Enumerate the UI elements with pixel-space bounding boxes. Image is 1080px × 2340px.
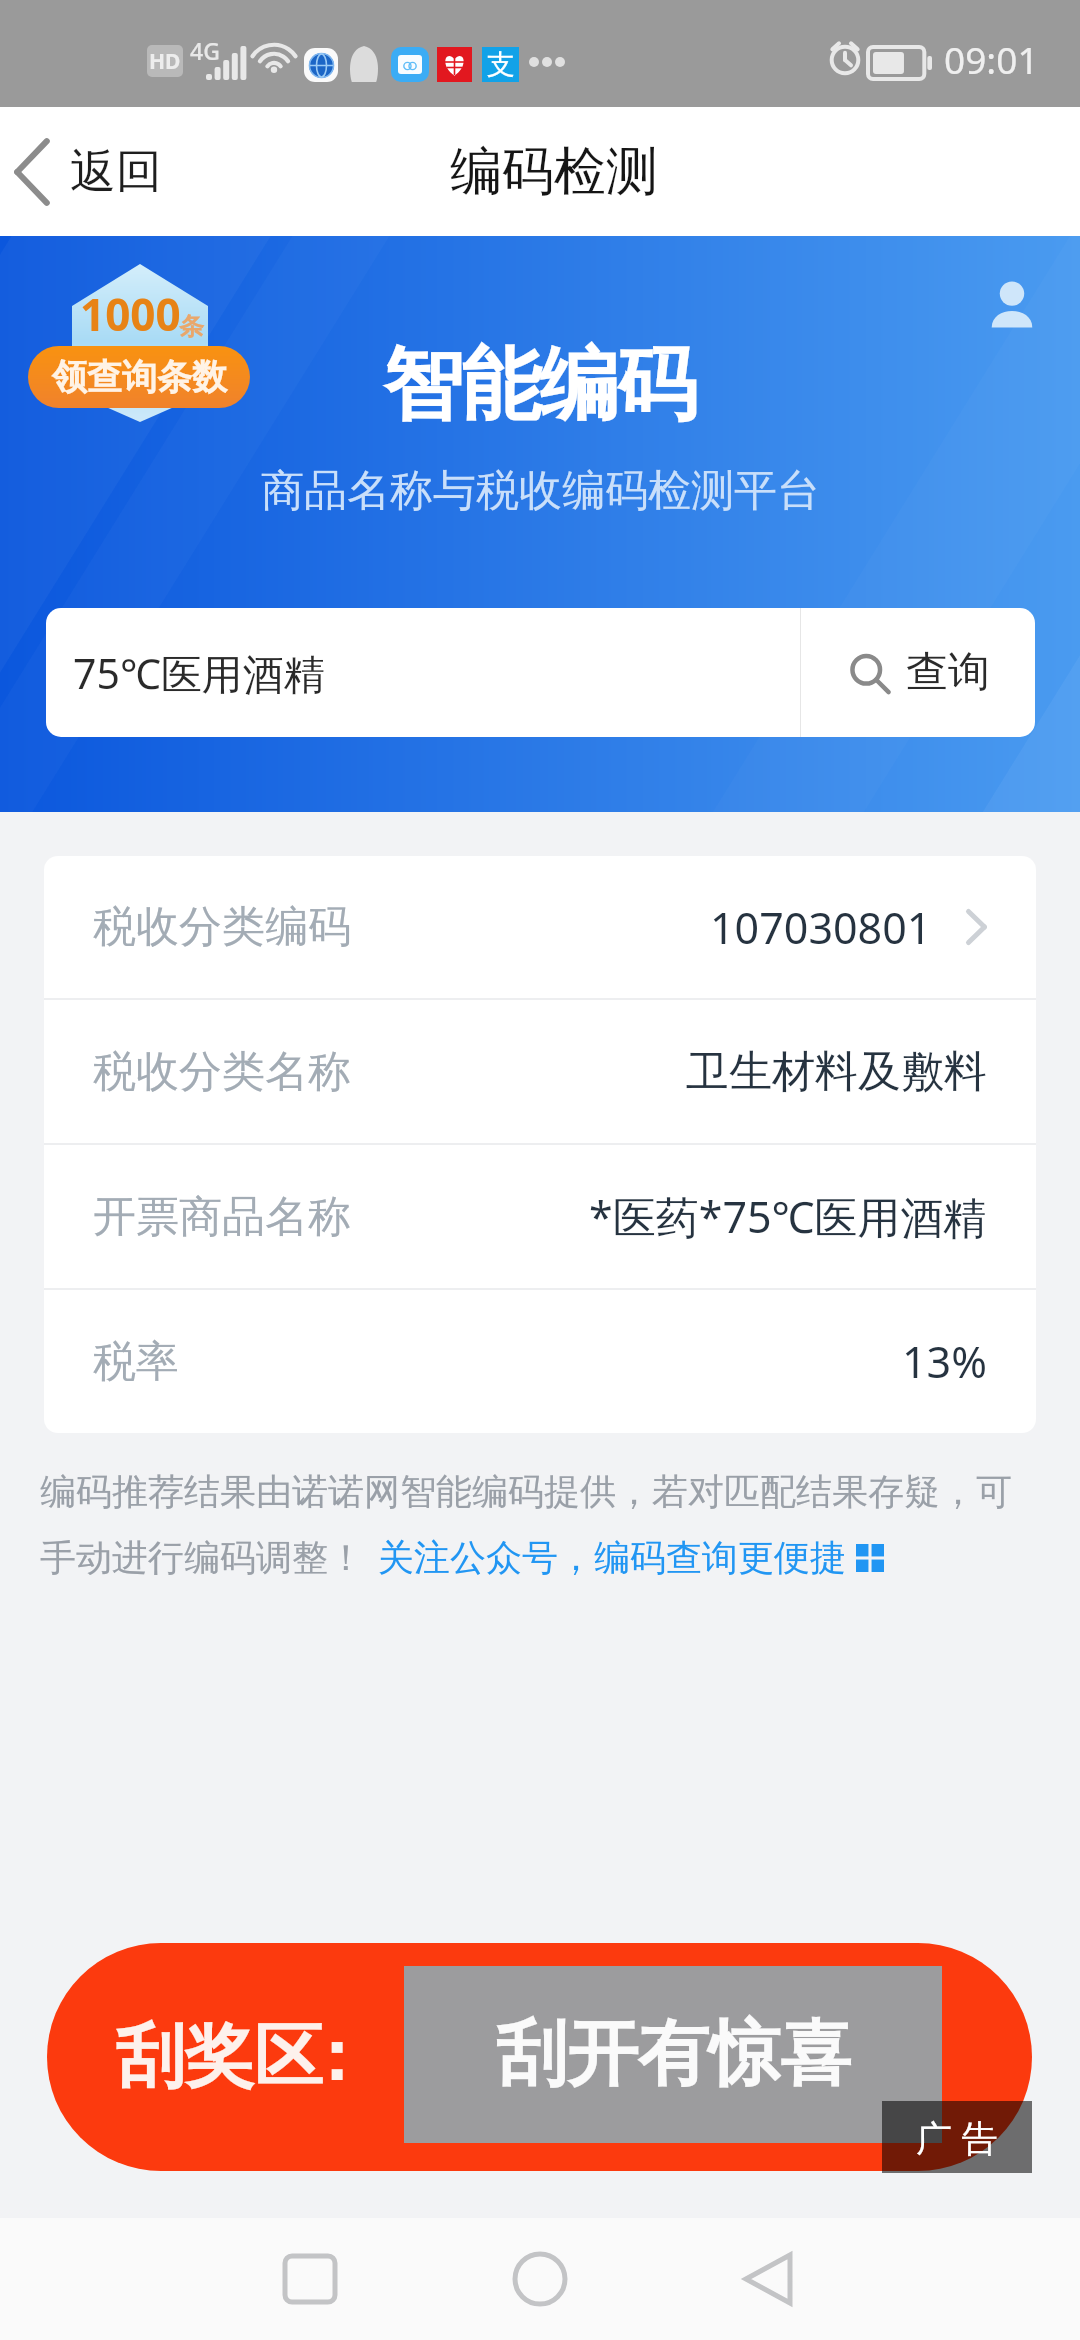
staticText: 条	[179, 311, 204, 342]
staticText: 商品名称与税收编码检测平台	[261, 464, 820, 518]
staticText: *医药*75℃医用酒精	[589, 1187, 987, 1246]
staticText: 编码推荐结果由诺诺网智能编码提供，若对匹配结果存疑，可	[40, 1469, 1012, 1514]
staticText: 智能编码	[384, 335, 696, 436]
button[interactable]: Home	[470, 2218, 610, 2340]
staticText: 1000	[80, 284, 181, 344]
staticText: 支	[487, 47, 515, 82]
staticText: 编码检测	[450, 139, 658, 205]
button[interactable]: 领查询条数	[28, 346, 250, 408]
staticText: ：	[301, 2014, 370, 2101]
staticText: 刮奖区	[116, 2014, 323, 2101]
button[interactable]: 刮奖区	[47, 1943, 1032, 2171]
staticText: 关注公众号，编码查询更便捷	[378, 1535, 846, 1580]
button[interactable]: 75℃医用酒精	[46, 608, 800, 737]
staticText: 税收分类名称	[93, 1045, 351, 1099]
staticText: 卫生材料及敷料	[686, 1045, 987, 1099]
staticText: 返回	[70, 143, 162, 201]
staticText: 税收分类编码	[93, 900, 351, 954]
button[interactable]: Back	[698, 2218, 838, 2340]
staticText: 广 告	[916, 2113, 998, 2162]
button[interactable]: 税收分类编码	[44, 856, 1036, 998]
staticText: 刮开有惊喜	[496, 2010, 851, 2099]
staticText: 手动进行编码调整！	[40, 1535, 364, 1580]
staticText: 查询	[906, 646, 990, 699]
staticText: 107030801	[710, 898, 932, 957]
staticText: 4G	[190, 35, 220, 66]
staticText: 09:01	[944, 34, 1039, 84]
staticText: 75℃医用酒精	[73, 645, 325, 701]
staticText: 税率	[93, 1335, 179, 1389]
button[interactable]: Account	[986, 278, 1038, 330]
staticText: 领查询条数	[52, 355, 227, 399]
button[interactable]: 关注公众号，编码查询更便捷	[378, 1535, 884, 1580]
staticText: HD	[149, 47, 181, 76]
button[interactable]: 税率	[44, 1290, 1036, 1433]
staticText: 13%	[902, 1332, 987, 1391]
button[interactable]: 返回	[0, 123, 184, 221]
button[interactable]: Advertisement	[882, 2101, 1032, 2173]
button[interactable]: Recent apps	[240, 2218, 380, 2340]
staticText: 开票商品名称	[93, 1190, 351, 1244]
button[interactable]: 查询	[801, 608, 1035, 737]
button[interactable]: 开票商品名称	[44, 1145, 1036, 1288]
button[interactable]: 税收分类名称	[44, 1000, 1036, 1143]
